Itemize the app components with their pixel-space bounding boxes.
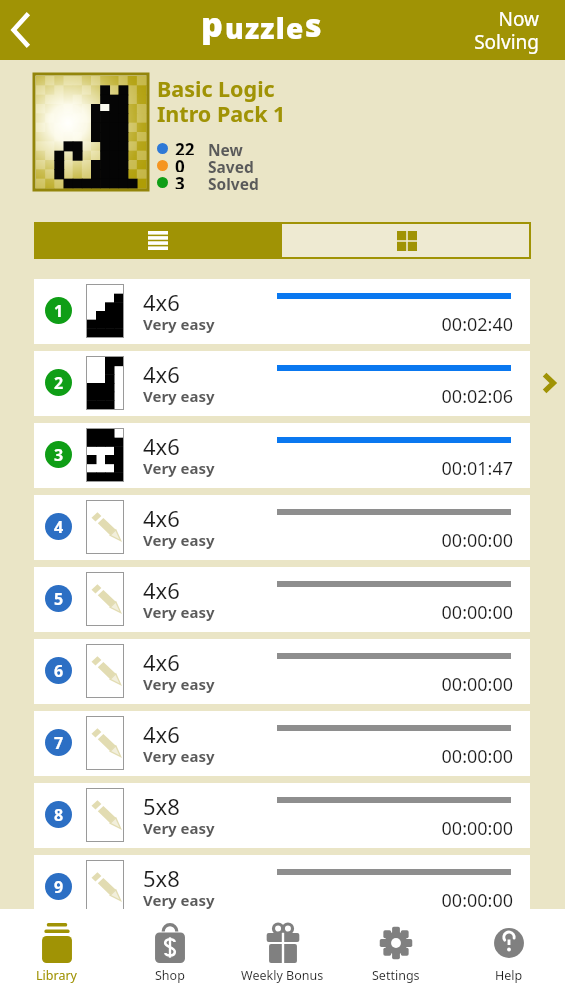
staticText: Basic Logic (157, 74, 275, 103)
staticText: 00:00:00 (277, 888, 513, 909)
button[interactable]: 4 (34, 495, 530, 560)
staticText: Very easy (143, 602, 215, 622)
staticText: Solved (208, 173, 259, 190)
staticText: Weekly Bonus (241, 967, 324, 984)
staticText: 8 (54, 804, 64, 826)
staticText: 4x6 (143, 719, 180, 749)
staticText: 00:00:00 (277, 816, 513, 840)
button[interactable]: 9 (34, 855, 530, 909)
button[interactable]: 2 (34, 351, 530, 416)
staticText: 1 (54, 300, 64, 322)
staticText: Library (36, 967, 77, 984)
button[interactable]: Weekly Bonus (226, 909, 339, 1004)
staticText: 9 (54, 876, 64, 898)
button[interactable]: 1 (34, 279, 530, 344)
staticText: 00:00:00 (277, 600, 513, 624)
staticText: Very easy (143, 674, 215, 694)
button[interactable]: 6 (34, 639, 530, 704)
staticText: Intro Pack 1 (157, 99, 286, 128)
staticText: 6 (54, 660, 64, 682)
staticText: Very easy (143, 458, 215, 478)
staticText: 3 (54, 444, 64, 466)
staticText: s (305, 3, 322, 47)
button[interactable]: List view (34, 222, 282, 259)
staticText: 00:02:40 (277, 312, 513, 336)
button[interactable]: Back (0, 0, 46, 60)
staticText: p (201, 1, 225, 47)
staticText: Very easy (143, 386, 215, 406)
staticText: Saved (208, 156, 254, 173)
staticText: 00:02:06 (277, 384, 513, 408)
button[interactable]: Next page (532, 352, 565, 414)
button[interactable]: 5 (34, 567, 530, 632)
staticText: 4x6 (143, 647, 180, 677)
staticText: 4x6 (143, 503, 180, 533)
staticText: 00:01:47 (277, 456, 513, 480)
button[interactable]: Library (0, 909, 113, 1004)
staticText: 00:00:00 (277, 672, 513, 696)
staticText: 3 (175, 172, 185, 189)
staticText: 22 (175, 138, 195, 155)
staticText: Very easy (143, 818, 215, 838)
staticText: 0 (175, 155, 185, 172)
staticText: 4x6 (143, 287, 180, 317)
button[interactable]: Help (452, 909, 565, 1004)
button[interactable]: Shop (113, 909, 226, 1004)
staticText: New (208, 139, 243, 156)
staticText: Very easy (143, 890, 215, 909)
button[interactable]: Now Solving (474, 6, 539, 54)
staticText: Very easy (143, 746, 215, 766)
staticText: 00:00:00 (277, 744, 513, 768)
staticText: Now Solving (474, 6, 539, 54)
staticText: 7 (54, 732, 64, 754)
staticText: uzzle (225, 9, 305, 47)
staticText: Very easy (143, 530, 215, 550)
staticText: Help (495, 967, 523, 984)
staticText: 2 (54, 372, 64, 394)
staticText: 4x6 (143, 359, 180, 389)
button[interactable]: Settings (339, 909, 452, 1004)
button[interactable]: Grid view (282, 222, 531, 259)
staticText: Shop (155, 967, 185, 984)
staticText: 4x6 (143, 431, 180, 461)
staticText: 4 (54, 516, 64, 538)
staticText: 5x8 (143, 863, 180, 893)
staticText: 4x6 (143, 575, 180, 605)
button[interactable]: 7 (34, 711, 530, 776)
button[interactable]: 3 (34, 423, 530, 488)
staticText: 00:00:00 (277, 528, 513, 552)
staticText: 5 (54, 588, 64, 610)
button[interactable]: 8 (34, 783, 530, 848)
staticText: Very easy (143, 314, 215, 334)
staticText: Settings (372, 967, 420, 984)
staticText: 5x8 (143, 791, 180, 821)
